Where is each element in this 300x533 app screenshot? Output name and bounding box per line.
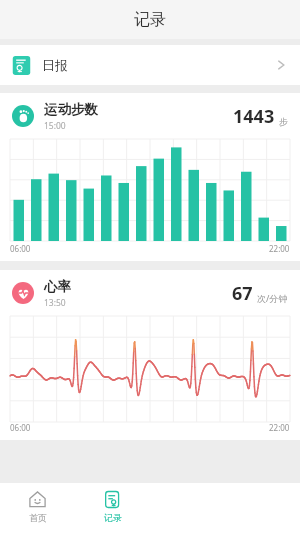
staticText: 记录 — [104, 512, 122, 523]
button[interactable]: 心率 — [0, 270, 300, 440]
button[interactable]: 运动步数 — [0, 93, 300, 261]
staticText: 步 — [279, 116, 288, 127]
staticText: 心率 — [44, 278, 71, 295]
staticText: 首页 — [29, 512, 47, 523]
staticText: 06:00 — [10, 422, 31, 433]
staticText: 记录 — [134, 10, 166, 30]
staticText: 22:00 — [269, 243, 290, 254]
staticText: 次/分钟 — [257, 292, 288, 304]
button[interactable]: 日报 — [0, 45, 300, 85]
button[interactable]: 记录 — [75, 483, 150, 533]
staticText: 22:00 — [269, 422, 290, 433]
staticText: 06:00 — [10, 243, 31, 254]
staticText: 1443 — [233, 104, 275, 129]
other: 记录 — [103, 490, 122, 509]
staticText: 运动步数 — [44, 101, 98, 118]
staticText: 日报 — [42, 57, 68, 73]
staticText: 67 — [232, 281, 253, 306]
other: 首页 — [28, 490, 47, 509]
staticText: 13:50 — [44, 297, 66, 309]
button[interactable]: 首页 — [0, 483, 75, 533]
staticText: 15:00 — [44, 120, 66, 132]
